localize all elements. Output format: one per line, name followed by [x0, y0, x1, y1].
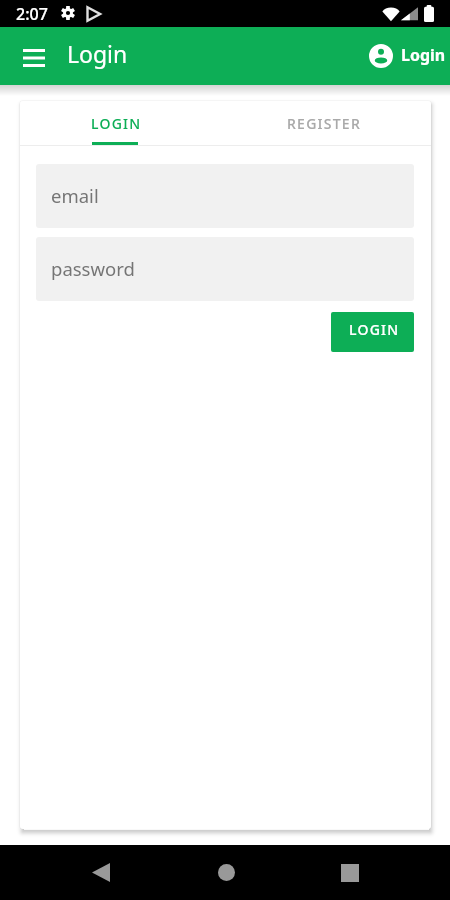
staticText: Login — [401, 44, 446, 66]
staticText: email — [51, 183, 99, 208]
button[interactable]: Home — [198, 845, 254, 900]
staticText: REGISTER — [287, 114, 361, 133]
button[interactable]: Recent apps — [322, 845, 378, 900]
button[interactable]: Back — [73, 845, 129, 900]
staticText: LOGIN — [349, 320, 400, 339]
staticText: LOGIN — [91, 114, 142, 133]
staticText: password — [51, 256, 135, 281]
button[interactable]: LOGIN — [41, 101, 191, 145]
button[interactable]: LOGIN — [331, 312, 414, 352]
button[interactable]: password — [36, 237, 414, 301]
button[interactable]: Login — [361, 34, 450, 76]
button[interactable]: REGISTER — [249, 101, 399, 145]
button[interactable]: email — [36, 164, 414, 228]
button[interactable]: Open navigation drawer — [11, 30, 57, 86]
staticText: Login — [67, 38, 128, 69]
staticText: 2:07 — [16, 3, 48, 25]
